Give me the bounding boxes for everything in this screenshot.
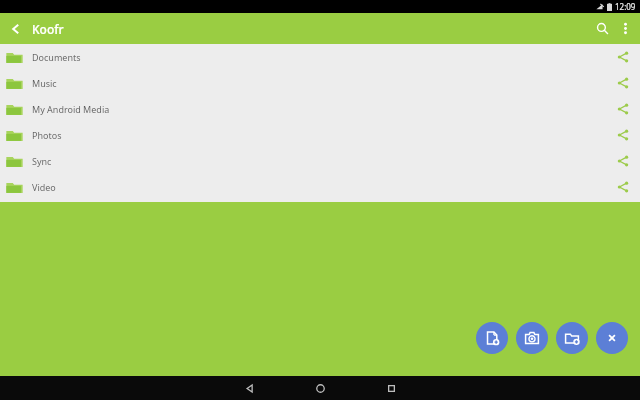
button[interactable]: Music: [0, 70, 640, 96]
staticText: Koofr: [32, 21, 64, 37]
button[interactable]: Share Video: [606, 174, 640, 200]
staticText: 12:09: [615, 1, 636, 12]
staticText: Music: [32, 77, 57, 89]
button[interactable]: Back: [227, 376, 271, 400]
button[interactable]: Video: [0, 174, 640, 200]
staticText: My Android Media: [32, 103, 110, 115]
button[interactable]: Share Photos: [606, 122, 640, 148]
button[interactable]: Share Sync: [606, 148, 640, 174]
button[interactable]: Share Documents: [606, 44, 640, 70]
button[interactable]: Documents: [0, 44, 640, 70]
staticText: Sync: [32, 155, 52, 167]
staticText: Video: [32, 181, 56, 193]
button[interactable]: Close: [596, 322, 628, 354]
button[interactable]: My Android Media: [0, 96, 640, 122]
button[interactable]: Take photo: [516, 322, 548, 354]
staticText: Documents: [32, 51, 81, 63]
button[interactable]: Upload file: [476, 322, 508, 354]
button[interactable]: Share My Android Media: [606, 96, 640, 122]
button[interactable]: Search: [589, 13, 615, 44]
button[interactable]: Sync: [0, 148, 640, 174]
button[interactable]: Home: [298, 376, 342, 400]
button[interactable]: New folder: [556, 322, 588, 354]
button[interactable]: Share Music: [606, 70, 640, 96]
button[interactable]: Recent apps: [369, 376, 413, 400]
button[interactable]: Koofr: [0, 13, 70, 44]
staticText: Photos: [32, 129, 62, 141]
button[interactable]: More options: [615, 13, 635, 44]
button[interactable]: Photos: [0, 122, 640, 148]
